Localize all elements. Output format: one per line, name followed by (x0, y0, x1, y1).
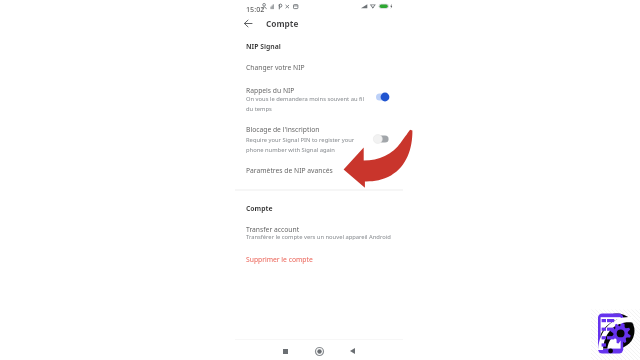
staticText: NIP Signal (246, 42, 281, 51)
staticText: On vous le demandera moins souvent au fi… (246, 95, 365, 112)
staticText: Blocage de l'inscription (246, 125, 320, 134)
staticText: Supprimer le compte (246, 255, 313, 264)
button[interactable]: Navigate back (344, 343, 360, 359)
button[interactable]: Transfer account (240, 223, 400, 243)
button[interactable]: Changer votre NIP (240, 61, 400, 75)
staticText: 15:02 (246, 4, 265, 14)
button[interactable]: Supprimer le compte (240, 253, 400, 267)
staticText: Require your Signal PIN to register your… (246, 136, 355, 153)
staticText: Paramètres de NIP avancés (246, 166, 333, 175)
staticText: Changer votre NIP (246, 63, 305, 72)
staticText: Transfer account (246, 225, 300, 234)
staticText: Compte (246, 204, 273, 213)
button[interactable]: Recents (277, 343, 293, 359)
button[interactable]: Home (311, 343, 327, 359)
button[interactable]: Paramètres de NIP avancés (240, 164, 400, 178)
staticText: Compte (266, 18, 299, 29)
button[interactable]: Rappels du NIP (240, 84, 400, 112)
staticText: Rappels du NIP (246, 86, 295, 95)
button[interactable]: App logo (590, 304, 640, 354)
button[interactable]: Blocage de l'inscription (240, 123, 400, 151)
button[interactable]: Back (241, 16, 255, 30)
staticText: Transférer le compte vers un nouvel appa… (246, 233, 391, 241)
